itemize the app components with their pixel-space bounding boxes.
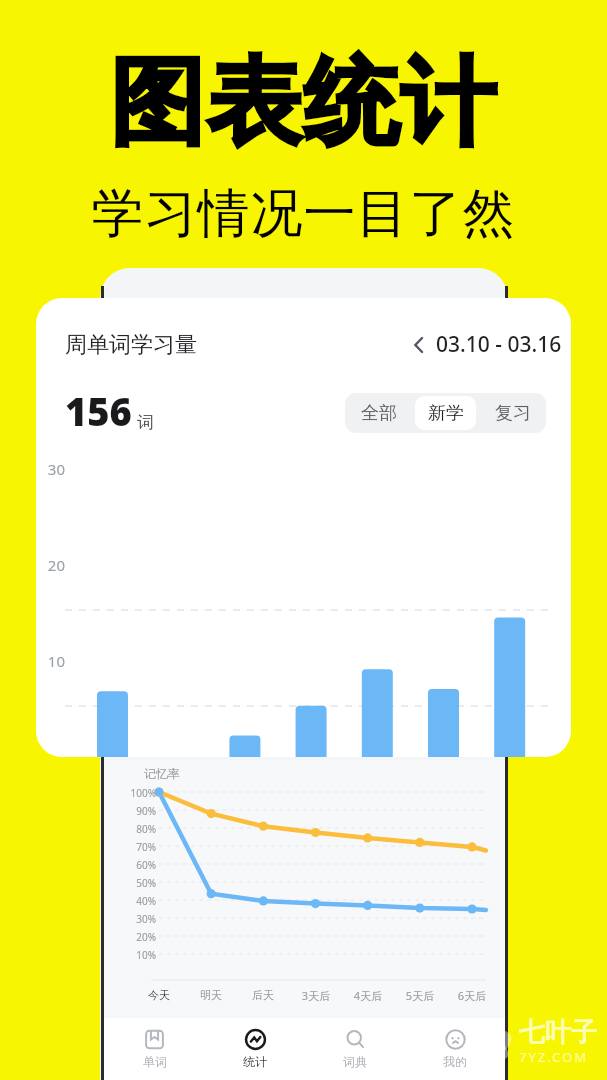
staticText: 单词	[143, 1054, 167, 1069]
staticText: 明天	[187, 988, 235, 1002]
staticText: 七叶子	[519, 1016, 597, 1049]
staticText: 全部	[361, 402, 397, 425]
staticText: 30%	[120, 912, 156, 926]
staticText: 20	[36, 555, 65, 575]
staticText: 70%	[120, 840, 156, 854]
staticText: 156	[65, 385, 132, 437]
button[interactable]: 统计	[205, 1018, 305, 1080]
staticText: 后天	[239, 988, 287, 1002]
button[interactable]: 我的	[405, 1018, 505, 1080]
button[interactable]: Previous week	[408, 334, 430, 356]
staticText: 学习情况一目了然	[0, 181, 607, 247]
staticText: 6天后	[448, 988, 496, 1003]
staticText: 100%	[120, 786, 156, 800]
staticText: 10	[36, 651, 65, 671]
staticText: 复习	[495, 402, 531, 425]
staticText: 20%	[120, 930, 156, 944]
staticText: 词	[137, 412, 154, 433]
button[interactable]: 词典	[305, 1018, 405, 1080]
button[interactable]: 复习	[482, 396, 543, 430]
staticText: 7YZ.COM	[519, 1048, 588, 1066]
staticText: 新学	[428, 402, 464, 425]
staticText: 90%	[120, 804, 156, 818]
staticText: 我的	[443, 1054, 467, 1069]
staticText: 60%	[120, 858, 156, 872]
staticText: 统计	[243, 1054, 267, 1069]
staticText: 记忆率	[144, 766, 180, 781]
button[interactable]: 全部	[348, 396, 409, 430]
staticText: 今天	[135, 988, 183, 1002]
staticText: 5天后	[396, 988, 444, 1003]
staticText: 80%	[120, 822, 156, 836]
staticText: 50%	[120, 876, 156, 890]
staticText: 03.10 - 03.16	[436, 330, 562, 359]
button[interactable]: 新学	[415, 396, 476, 430]
staticText: 40%	[120, 894, 156, 908]
button[interactable]: 单词	[104, 1018, 205, 1080]
staticText: 词典	[343, 1054, 367, 1069]
staticText: 3天后	[292, 988, 340, 1003]
staticText: 30	[36, 459, 65, 479]
staticText: 图表统计	[0, 44, 607, 164]
staticText: 10%	[120, 948, 156, 962]
staticText: 4天后	[344, 988, 392, 1003]
staticText: 周单词学习量	[65, 331, 197, 359]
